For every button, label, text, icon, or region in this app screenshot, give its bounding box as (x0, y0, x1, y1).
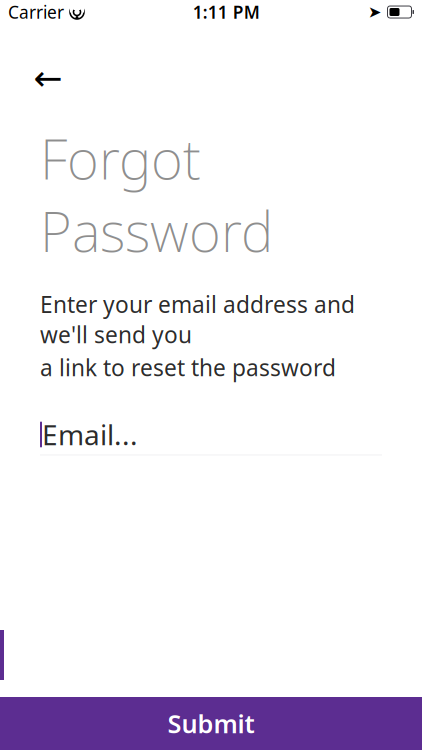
staticText: Carrier (8, 0, 64, 23)
staticText: Email... (42, 416, 138, 453)
staticText: ← (33, 58, 62, 98)
button[interactable]: Back (26, 58, 70, 98)
staticText: Forgot Password (40, 122, 273, 267)
button[interactable]: Email address field (40, 414, 382, 454)
staticText: ➤ (368, 3, 381, 21)
staticText: 1:11 PM (193, 0, 260, 23)
staticText: Submit (167, 707, 254, 740)
button[interactable]: Submit (0, 697, 422, 750)
staticText: Enter your email address and we'll send … (40, 289, 355, 349)
staticText: a link to reset the password (40, 352, 336, 382)
